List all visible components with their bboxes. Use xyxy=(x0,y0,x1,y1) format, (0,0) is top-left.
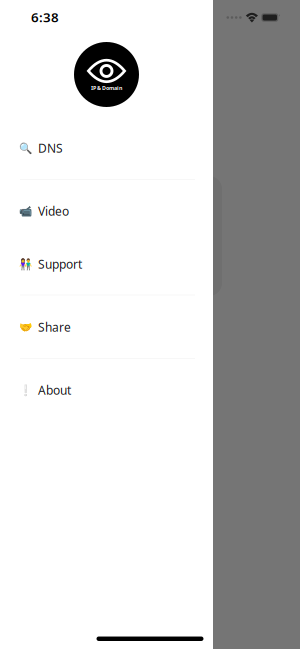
staticText: Video xyxy=(38,203,69,219)
staticText: Support xyxy=(38,256,82,272)
button[interactable]: 👫 xyxy=(0,242,213,286)
staticText: 👫 xyxy=(19,258,32,270)
button[interactable]: 🤝 xyxy=(0,305,213,349)
button[interactable]: ❕ xyxy=(0,368,213,412)
staticText: Share xyxy=(38,319,71,335)
staticText: 6:38 xyxy=(31,8,59,26)
button[interactable]: 🔍 xyxy=(0,126,213,170)
staticText: ❕ xyxy=(19,384,32,396)
staticText: 📹 xyxy=(19,205,32,217)
staticText: DNS xyxy=(38,140,63,156)
button[interactable]: 📹 xyxy=(0,189,213,233)
staticText: About xyxy=(38,382,71,398)
staticText: IP & Domain xyxy=(91,84,122,92)
staticText: 🤝 xyxy=(19,321,32,333)
staticText: 🔍 xyxy=(19,142,32,154)
